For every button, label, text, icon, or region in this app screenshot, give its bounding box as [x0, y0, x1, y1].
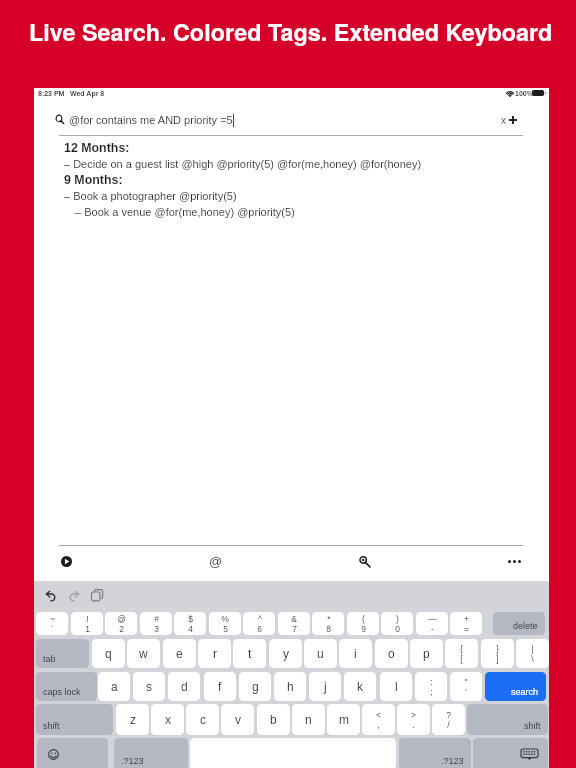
button[interactable]: *	[312, 612, 344, 635]
staticText: =	[464, 624, 469, 633]
staticText: [	[460, 654, 463, 663]
button[interactable]: s	[133, 672, 165, 701]
button[interactable]: "	[450, 672, 482, 701]
staticText: @	[209, 554, 223, 569]
button[interactable]: search	[485, 672, 546, 701]
button[interactable]: k	[344, 672, 376, 701]
button[interactable]: Search	[52, 111, 70, 129]
button[interactable]: shift	[467, 704, 548, 735]
button[interactable]: b	[257, 704, 290, 735]
button[interactable]: @	[105, 612, 137, 635]
button[interactable]: p	[410, 639, 443, 668]
button[interactable]: o	[375, 639, 408, 668]
button[interactable]	[473, 738, 548, 768]
staticText: /	[447, 720, 450, 729]
button[interactable]: ^	[243, 612, 275, 635]
button[interactable]: d	[168, 672, 200, 701]
button[interactable]: x	[151, 704, 184, 735]
staticText: 7	[292, 624, 297, 633]
button[interactable]: <	[362, 704, 395, 735]
button[interactable]: shift	[36, 704, 113, 735]
staticText: #	[154, 614, 159, 623]
button[interactable]: Paste	[87, 585, 107, 605]
button[interactable]: m	[327, 704, 360, 735]
button[interactable]: Zoom	[353, 550, 375, 572]
button[interactable]: n	[292, 704, 325, 735]
button[interactable]: >	[397, 704, 430, 735]
button[interactable]: y	[269, 639, 302, 668]
staticText: —	[428, 614, 437, 623]
button[interactable]: t	[233, 639, 266, 668]
staticText: search	[511, 687, 539, 697]
button[interactable]: {	[445, 639, 478, 668]
staticText: -	[431, 624, 434, 633]
staticText: @	[117, 614, 126, 623]
button[interactable]: Clear	[495, 112, 511, 128]
button[interactable]: !	[71, 612, 103, 635]
staticText: Live Search. Colored Tags. Extended Keyb…	[29, 15, 553, 49]
button[interactable]: ?	[432, 704, 465, 735]
staticText: m	[339, 713, 349, 726]
button[interactable]: #	[140, 612, 172, 635]
button[interactable]: (	[347, 612, 379, 635]
staticText: ?	[446, 710, 451, 719]
staticText: 2	[119, 624, 124, 633]
button[interactable]: g	[239, 672, 271, 701]
button[interactable]: h	[274, 672, 306, 701]
staticText: *	[327, 614, 331, 623]
button[interactable]: .?123	[399, 738, 471, 768]
staticText: ]	[496, 654, 499, 663]
button[interactable]: —	[416, 612, 448, 635]
button[interactable]: f	[204, 672, 236, 701]
button[interactable]: j	[309, 672, 341, 701]
button[interactable]: caps lock	[36, 672, 97, 701]
button[interactable]: More	[503, 550, 525, 572]
button[interactable]	[37, 738, 108, 768]
button[interactable]: Tags	[205, 550, 227, 572]
button[interactable]: :	[415, 672, 447, 701]
button[interactable]: .?123	[114, 738, 188, 768]
button[interactable]: )	[381, 612, 413, 635]
staticText: ,	[377, 720, 380, 729]
staticText: .	[412, 720, 415, 729]
button[interactable]: }	[481, 639, 514, 668]
staticText: c	[200, 713, 206, 726]
button[interactable]: i	[339, 639, 372, 668]
button[interactable]: tab	[36, 639, 89, 668]
button[interactable]: – Book a venue @for(me,honey) @priority(…	[50, 204, 532, 220]
button[interactable]: u	[304, 639, 337, 668]
button[interactable]: w	[127, 639, 160, 668]
button[interactable]: v	[221, 704, 254, 735]
staticText: 6	[257, 624, 262, 633]
button[interactable]: delete	[493, 612, 545, 635]
button[interactable]: – Book a photographer @priority(5)	[50, 188, 532, 204]
button[interactable]: &	[278, 612, 310, 635]
button[interactable]: 9 Months:	[50, 172, 532, 188]
button[interactable]: +	[450, 612, 482, 635]
button[interactable]: Redo	[64, 586, 84, 606]
staticText: t	[248, 647, 252, 660]
button[interactable]: ~	[36, 612, 68, 635]
button[interactable]: |	[516, 639, 549, 668]
staticText: 8	[326, 624, 331, 633]
button[interactable]: a	[98, 672, 130, 701]
staticText: x	[165, 713, 171, 726]
button[interactable]: z	[116, 704, 149, 735]
button[interactable]: – Decide on a guest list @high @priority…	[50, 156, 532, 172]
button[interactable]: $	[174, 612, 206, 635]
button[interactable]: e	[163, 639, 196, 668]
button[interactable]: Undo	[41, 586, 61, 606]
button[interactable]: Play	[55, 550, 77, 572]
button[interactable]: l	[380, 672, 412, 701]
button[interactable]: q	[92, 639, 125, 668]
button[interactable]: c	[186, 704, 219, 735]
button[interactable]: %	[209, 612, 241, 635]
staticText: tab	[43, 654, 56, 664]
button[interactable]: r	[198, 639, 231, 668]
staticText: w	[139, 647, 148, 660]
button[interactable]: Add	[505, 112, 521, 128]
staticText: v	[235, 713, 241, 726]
button[interactable]: 12 Months:	[50, 140, 532, 156]
staticText: n	[305, 713, 312, 726]
